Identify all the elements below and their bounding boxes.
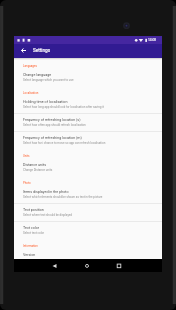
button[interactable]: Text color <box>14 225 162 243</box>
button[interactable]: Holding time of localisation <box>14 99 162 117</box>
staticText: Select how often app should refresh loca… <box>23 123 167 126</box>
button[interactable]: Distance units <box>14 162 162 180</box>
staticText: Select where text should be displayed <box>23 213 167 216</box>
staticText: Version <box>23 253 167 257</box>
staticText: Holding time of localisation <box>23 100 167 104</box>
staticText: Change language <box>23 73 167 77</box>
staticText: Frequency of refreshing location (s) <box>23 118 167 122</box>
staticText: Text position <box>23 208 167 212</box>
button[interactable]: Version <box>14 252 162 259</box>
staticText: Select how long app should look for loca… <box>23 105 167 108</box>
staticText: Distance units <box>23 163 167 167</box>
button[interactable]: Frequency of refreshing location (m) <box>14 135 162 153</box>
staticText: Text color <box>23 226 167 230</box>
button[interactable]: Change language <box>14 72 162 90</box>
staticText: Languages <box>23 64 37 67</box>
button[interactable]: Recents <box>113 260 125 272</box>
staticText: Localisation <box>23 91 39 94</box>
button[interactable]: Back <box>49 260 61 272</box>
staticText: Select text color <box>23 231 167 234</box>
staticText: Frequency of refreshing location (m) <box>23 136 167 140</box>
staticText: 14:08 <box>148 38 157 42</box>
staticText: Settings <box>33 48 51 54</box>
button[interactable]: Items displayed in the photo <box>14 189 162 207</box>
staticText: Items displayed in the photo <box>23 190 167 194</box>
staticText: Information <box>23 244 38 247</box>
button[interactable]: Frequency of refreshing location (s) <box>14 117 162 135</box>
staticText: Units <box>23 154 30 157</box>
staticText: Select language which you want to use <box>23 78 167 81</box>
button[interactable]: Text position <box>14 207 162 225</box>
button[interactable]: Back <box>17 44 30 57</box>
button[interactable]: Home <box>81 260 93 272</box>
staticText: Photo <box>23 181 31 184</box>
staticText: Change Distance units <box>23 168 167 171</box>
staticText: Select how far i chance to move so app c… <box>23 141 167 144</box>
staticText: Select which elements should be shown as… <box>23 195 167 198</box>
